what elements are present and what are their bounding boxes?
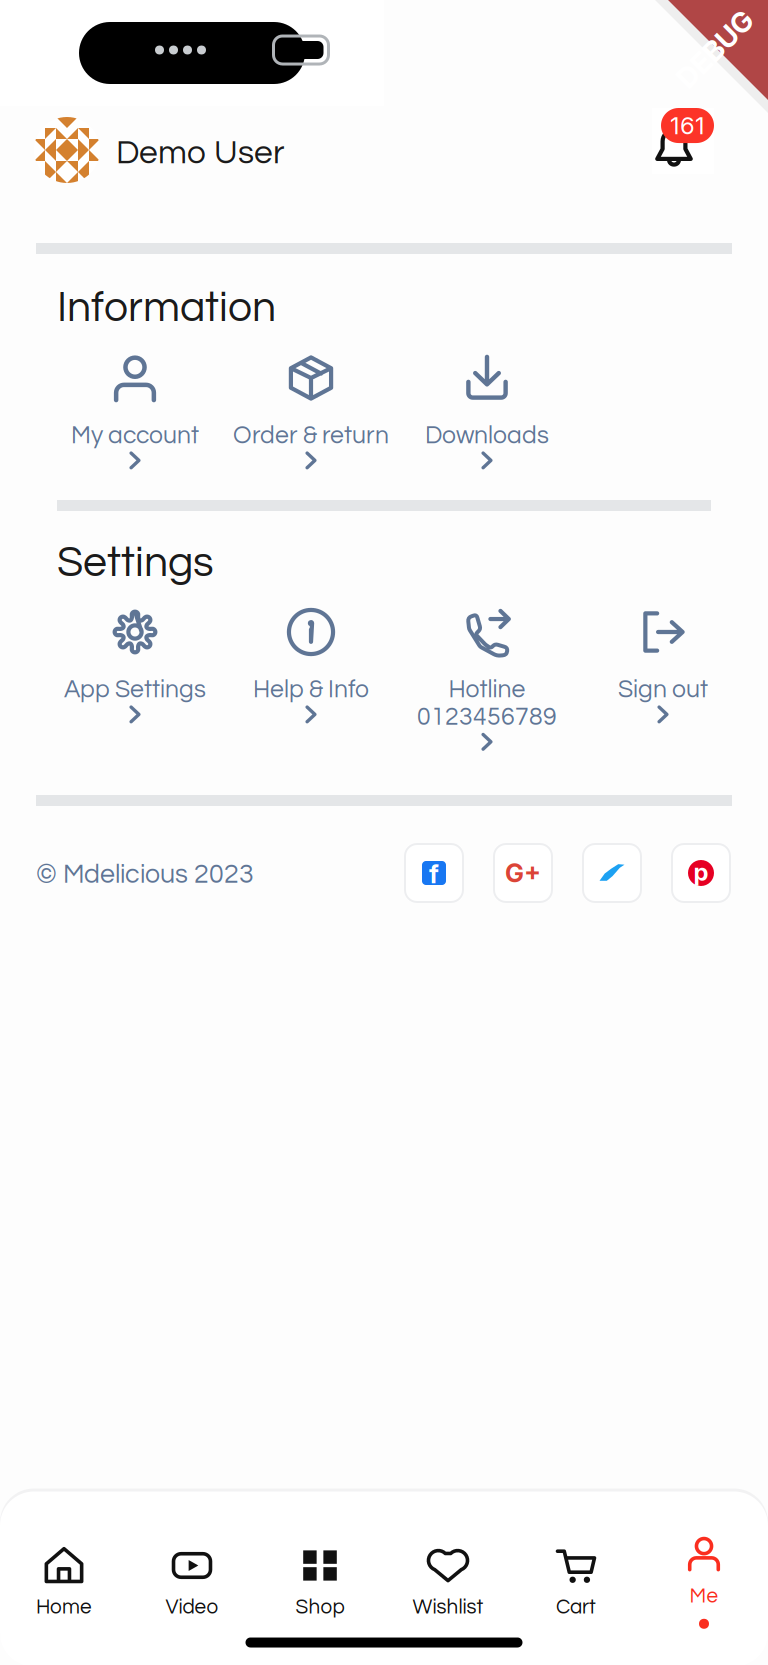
staticText: Hotline [448,677,525,702]
button[interactable]: Order & return [223,350,399,469]
button[interactable]: Help & Info [223,604,399,723]
staticText: Shop [295,1596,344,1618]
staticText: App Settings [64,677,206,702]
button[interactable]: Downloads [399,350,575,469]
button[interactable]: My account [47,350,223,469]
staticText: Sign out [618,677,708,702]
staticText: Video [165,1596,218,1618]
staticText: Me [689,1585,718,1607]
staticText: DEBUG [667,32,763,66]
button[interactable]: App Settings [47,604,223,723]
button[interactable]: Twitter [582,843,642,903]
staticText: Demo User [116,136,285,170]
staticText: 161 [670,111,705,140]
staticText: 2:07 [112,31,184,75]
staticText: © Mdelicious 2023 [36,861,254,888]
staticText: Order & return [233,423,389,448]
staticText: Help & Info [253,677,369,702]
staticText: My account [71,423,199,448]
staticText: Home [36,1596,92,1618]
button[interactable]: Pinterest [671,843,731,903]
staticText: Cart [556,1596,596,1618]
button[interactable]: Me [640,1534,768,1629]
staticText: Settings [57,541,214,585]
staticText: Information [57,286,276,330]
button[interactable]: Hotline [399,604,575,751]
staticText: G+ [505,858,541,888]
button[interactable]: Sign out [575,604,751,723]
button[interactable]: Home [0,1545,128,1618]
button[interactable]: Google Plus [493,843,553,903]
button[interactable]: Video [128,1545,256,1618]
button[interactable]: Shop [256,1545,384,1618]
button[interactable]: Cart [512,1545,640,1618]
staticText: Downloads [425,423,549,448]
staticText: 0123456789 [417,704,557,730]
button[interactable]: Facebook [404,843,464,903]
button[interactable]: Wishlist [384,1545,512,1618]
staticText: p [693,857,708,886]
staticText: f [429,859,439,889]
button[interactable]: Notifications [652,108,714,174]
staticText: Wishlist [412,1596,483,1618]
